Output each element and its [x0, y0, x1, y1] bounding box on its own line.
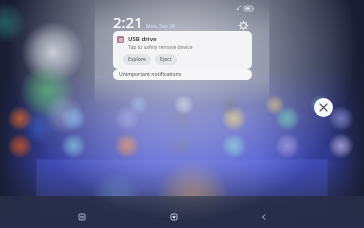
button[interactable]: Back	[252, 206, 276, 228]
button[interactable]: Settings	[236, 18, 250, 32]
button[interactable]: USB drive	[113, 31, 252, 69]
staticText: Tap to safely remove device	[128, 44, 193, 51]
button[interactable]: Close notifications	[314, 98, 333, 117]
staticText: Explore	[128, 56, 146, 63]
button[interactable]: Home	[162, 206, 186, 228]
button[interactable]: Unimportant notifications	[113, 69, 252, 80]
button[interactable]: Recent apps	[70, 206, 94, 228]
staticText: Eject	[160, 56, 172, 63]
staticText: USB drive	[128, 35, 157, 43]
button[interactable]: Explore	[123, 54, 151, 65]
button[interactable]: Eject	[155, 54, 177, 65]
staticText: Mon, Sep 28	[146, 23, 175, 30]
staticText: 2:21	[113, 12, 143, 32]
staticText: Unimportant notifications	[119, 71, 182, 78]
